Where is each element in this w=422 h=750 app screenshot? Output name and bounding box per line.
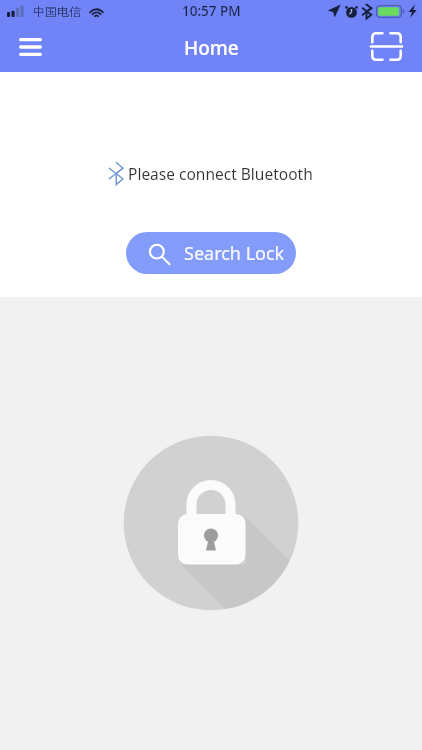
staticText: 10:57 PM	[182, 2, 241, 20]
staticText: 中国电信	[33, 4, 81, 19]
button[interactable]: Search Lock	[126, 232, 296, 274]
staticText: Search Lock	[184, 241, 285, 266]
button[interactable]: Scan QR code	[368, 24, 404, 69]
button[interactable]: Menu	[7, 24, 53, 69]
staticText: Home	[184, 35, 239, 61]
staticText: Please connect Bluetooth	[128, 163, 313, 184]
